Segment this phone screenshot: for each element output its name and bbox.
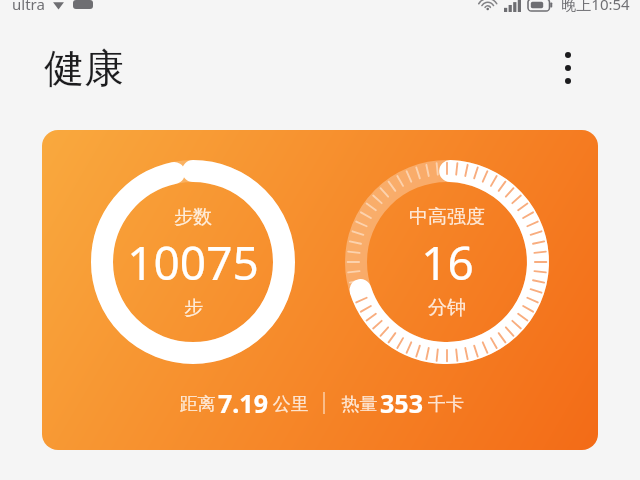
staticText: 分钟 — [428, 296, 466, 320]
staticText: 晚上10:54 — [561, 0, 630, 14]
staticText: 公里 — [268, 391, 309, 416]
staticText: 步 — [184, 296, 203, 320]
staticText: ultra — [12, 0, 45, 14]
staticText: 中高强度 — [409, 205, 485, 229]
staticText: 16 — [421, 231, 474, 294]
staticText: 健康 — [44, 43, 124, 93]
staticText: 7.19 — [218, 386, 268, 420]
staticText: 千卡 — [423, 391, 464, 416]
staticText: 距离 — [177, 391, 218, 416]
staticText: 10075 — [127, 231, 259, 294]
button[interactable]: More options — [544, 44, 592, 92]
staticText: 热量 — [339, 391, 380, 416]
button[interactable]: 步数 — [91, 160, 295, 364]
button[interactable]: 步数 — [42, 130, 598, 450]
staticText: 步数 — [174, 205, 212, 229]
staticText: 353 — [380, 386, 423, 420]
button[interactable]: 中高强度 — [345, 160, 549, 364]
